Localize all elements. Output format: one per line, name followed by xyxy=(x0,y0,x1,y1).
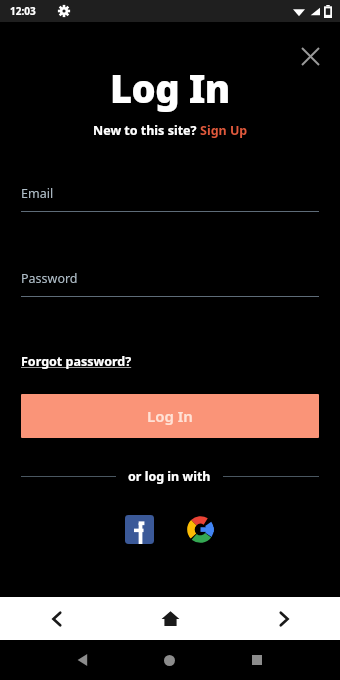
button[interactable]: Forgot password? xyxy=(21,353,132,370)
staticText: New to this site? xyxy=(93,122,200,139)
button[interactable]: Log In xyxy=(21,394,319,438)
button[interactable]: Sign Up xyxy=(200,122,248,139)
button[interactable]: Log in with Facebook xyxy=(125,515,154,544)
button[interactable]: Forward xyxy=(227,597,340,640)
staticText: Log In xyxy=(110,62,230,114)
staticText: or log in with xyxy=(128,468,211,485)
staticText: 12:03 xyxy=(10,4,36,18)
staticText: Forgot password? xyxy=(21,353,132,370)
staticText: Email xyxy=(21,185,54,202)
button[interactable]: Log in with Google xyxy=(186,515,215,544)
staticText: Log In xyxy=(147,406,193,426)
button[interactable]: Recent apps xyxy=(213,640,300,680)
button[interactable]: Home xyxy=(114,597,227,640)
staticText: Sign Up xyxy=(200,122,248,139)
button[interactable]: Home xyxy=(126,640,213,680)
button[interactable]: Back xyxy=(40,640,126,680)
staticText: Password xyxy=(21,270,78,287)
button[interactable]: Back xyxy=(0,597,114,640)
button[interactable]: Close xyxy=(292,38,328,74)
